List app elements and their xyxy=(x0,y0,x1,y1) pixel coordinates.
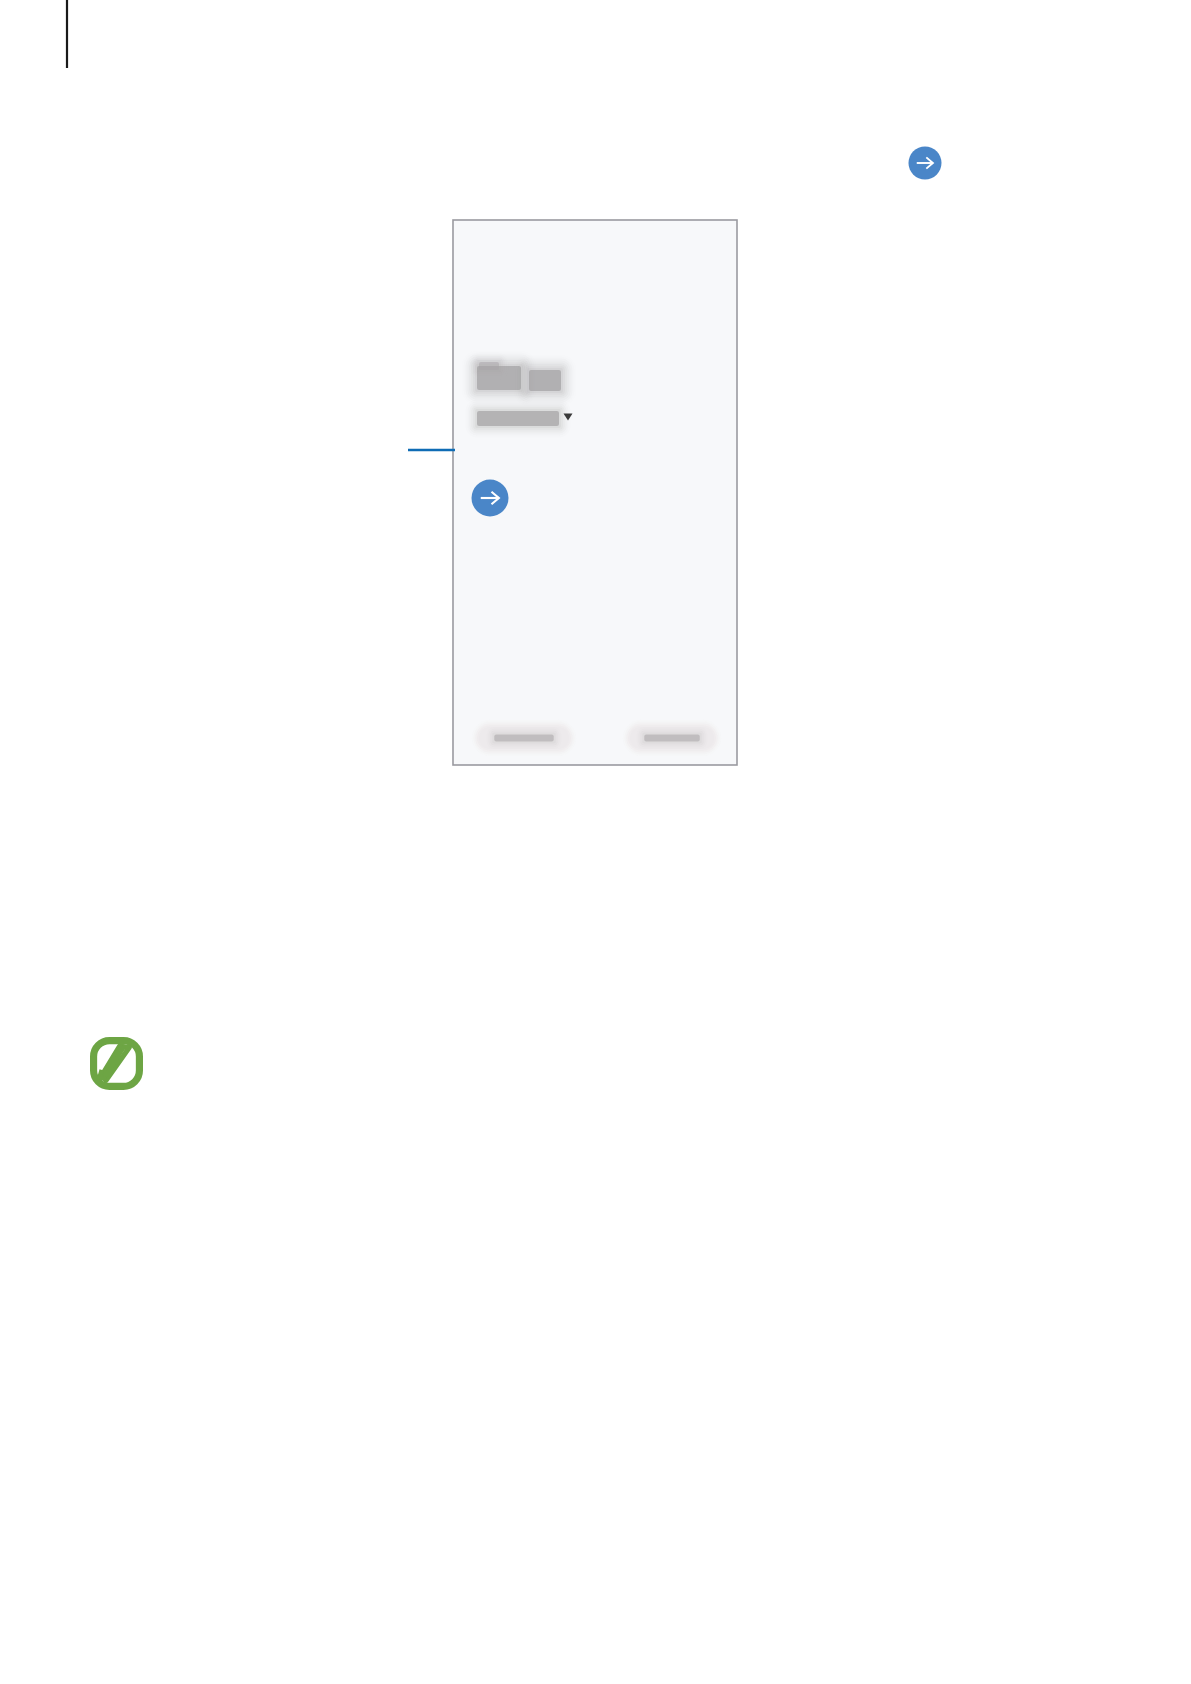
button[interactable]: Select language xyxy=(477,404,585,434)
button[interactable]: Next xyxy=(909,147,941,179)
button[interactable]: Note xyxy=(88,1035,146,1093)
button[interactable]: Accessibility xyxy=(477,723,573,753)
button[interactable]: Continue xyxy=(472,480,508,516)
button[interactable]: Emergency call xyxy=(626,723,718,753)
